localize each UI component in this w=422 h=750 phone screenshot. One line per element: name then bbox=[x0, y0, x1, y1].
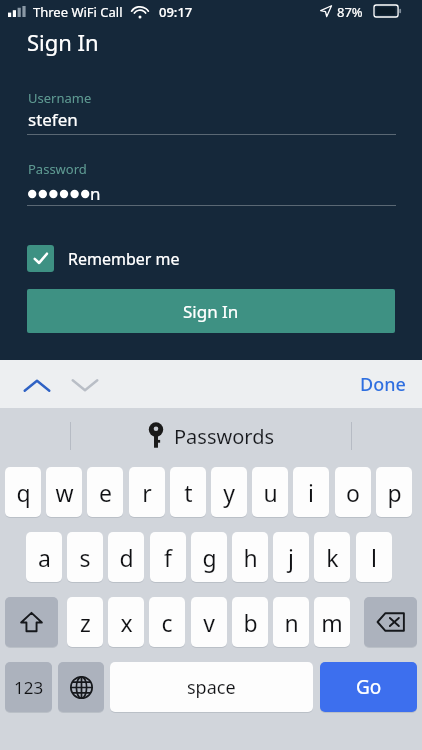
button[interactable]: k bbox=[314, 532, 350, 582]
button[interactable]: i bbox=[293, 467, 329, 517]
staticText: l bbox=[371, 542, 377, 573]
staticText: Sign In bbox=[183, 300, 239, 323]
staticText: 09:17 bbox=[159, 3, 193, 21]
staticText: Passwords bbox=[174, 423, 275, 450]
staticText: w bbox=[55, 477, 74, 508]
staticText: j bbox=[288, 542, 294, 573]
staticText: y bbox=[223, 477, 235, 508]
staticText: n bbox=[284, 607, 299, 638]
staticText: v bbox=[203, 607, 215, 638]
button[interactable]: Sign In bbox=[27, 289, 395, 333]
button[interactable]: s bbox=[67, 532, 103, 582]
staticText: k bbox=[326, 542, 339, 573]
button[interactable]: c bbox=[149, 597, 185, 647]
button[interactable]: w bbox=[46, 467, 82, 517]
staticText: stefen bbox=[28, 108, 78, 131]
button[interactable]: n bbox=[273, 597, 309, 647]
button[interactable]: Shift bbox=[5, 597, 58, 647]
staticText: r bbox=[142, 477, 152, 508]
button[interactable]: Passwords bbox=[147, 422, 275, 450]
staticText: 123 bbox=[14, 676, 44, 699]
button[interactable]: 123 bbox=[5, 662, 52, 712]
staticText: d bbox=[119, 542, 134, 573]
button[interactable]: z bbox=[67, 597, 103, 647]
button[interactable]: d bbox=[108, 532, 144, 582]
button[interactable]: x bbox=[108, 597, 144, 647]
button[interactable]: r bbox=[129, 467, 165, 517]
button[interactable]: e bbox=[87, 467, 123, 517]
staticText: b bbox=[243, 607, 258, 638]
button[interactable]: y bbox=[211, 467, 247, 517]
staticText: Sign In bbox=[27, 27, 99, 57]
button[interactable]: Done bbox=[360, 372, 406, 397]
button[interactable]: Backspace bbox=[364, 597, 417, 647]
staticText: h bbox=[243, 542, 258, 573]
button[interactable]: u bbox=[252, 467, 288, 517]
staticText: s bbox=[79, 542, 91, 573]
button[interactable]: Next field bbox=[64, 372, 106, 398]
staticText: o bbox=[346, 477, 360, 508]
button[interactable]: Previous field bbox=[16, 372, 58, 398]
button[interactable]: m bbox=[314, 597, 350, 647]
button[interactable]: g bbox=[191, 532, 227, 582]
staticText: x bbox=[120, 607, 133, 638]
staticText: t bbox=[184, 477, 193, 508]
staticText: p bbox=[387, 477, 402, 508]
staticText: n bbox=[90, 182, 101, 205]
button[interactable]: j bbox=[273, 532, 309, 582]
staticText: i bbox=[308, 477, 314, 508]
staticText: 87% bbox=[337, 3, 363, 21]
button[interactable]: t bbox=[170, 467, 206, 517]
staticText: u bbox=[263, 477, 278, 508]
button[interactable]: l bbox=[356, 532, 392, 582]
button[interactable]: Switch keyboard bbox=[58, 662, 104, 712]
staticText: z bbox=[80, 607, 91, 638]
staticText: Username bbox=[28, 89, 92, 107]
button[interactable]: b bbox=[232, 597, 268, 647]
button[interactable]: a bbox=[26, 532, 62, 582]
button[interactable]: space bbox=[110, 662, 313, 712]
button[interactable]: h bbox=[232, 532, 268, 582]
button[interactable]: Go bbox=[320, 662, 417, 712]
button[interactable]: p bbox=[376, 467, 412, 517]
staticText: Go bbox=[356, 674, 382, 700]
staticText: Remember me bbox=[68, 248, 180, 270]
staticText: Password bbox=[28, 160, 87, 178]
staticText: Done bbox=[360, 372, 406, 397]
staticText: a bbox=[38, 542, 51, 573]
staticText: e bbox=[99, 477, 112, 508]
button[interactable]: o bbox=[335, 467, 371, 517]
staticText: Three WiFi Call bbox=[33, 3, 123, 21]
staticText: g bbox=[202, 542, 217, 573]
button[interactable]: f bbox=[150, 532, 186, 582]
button[interactable]: Remember me bbox=[27, 245, 180, 272]
button[interactable]: q bbox=[5, 467, 41, 517]
staticText: c bbox=[161, 607, 173, 638]
staticText: f bbox=[164, 542, 172, 573]
staticText: m bbox=[321, 607, 343, 638]
staticText: space bbox=[187, 675, 236, 700]
button[interactable]: v bbox=[191, 597, 227, 647]
staticText: q bbox=[16, 477, 31, 508]
